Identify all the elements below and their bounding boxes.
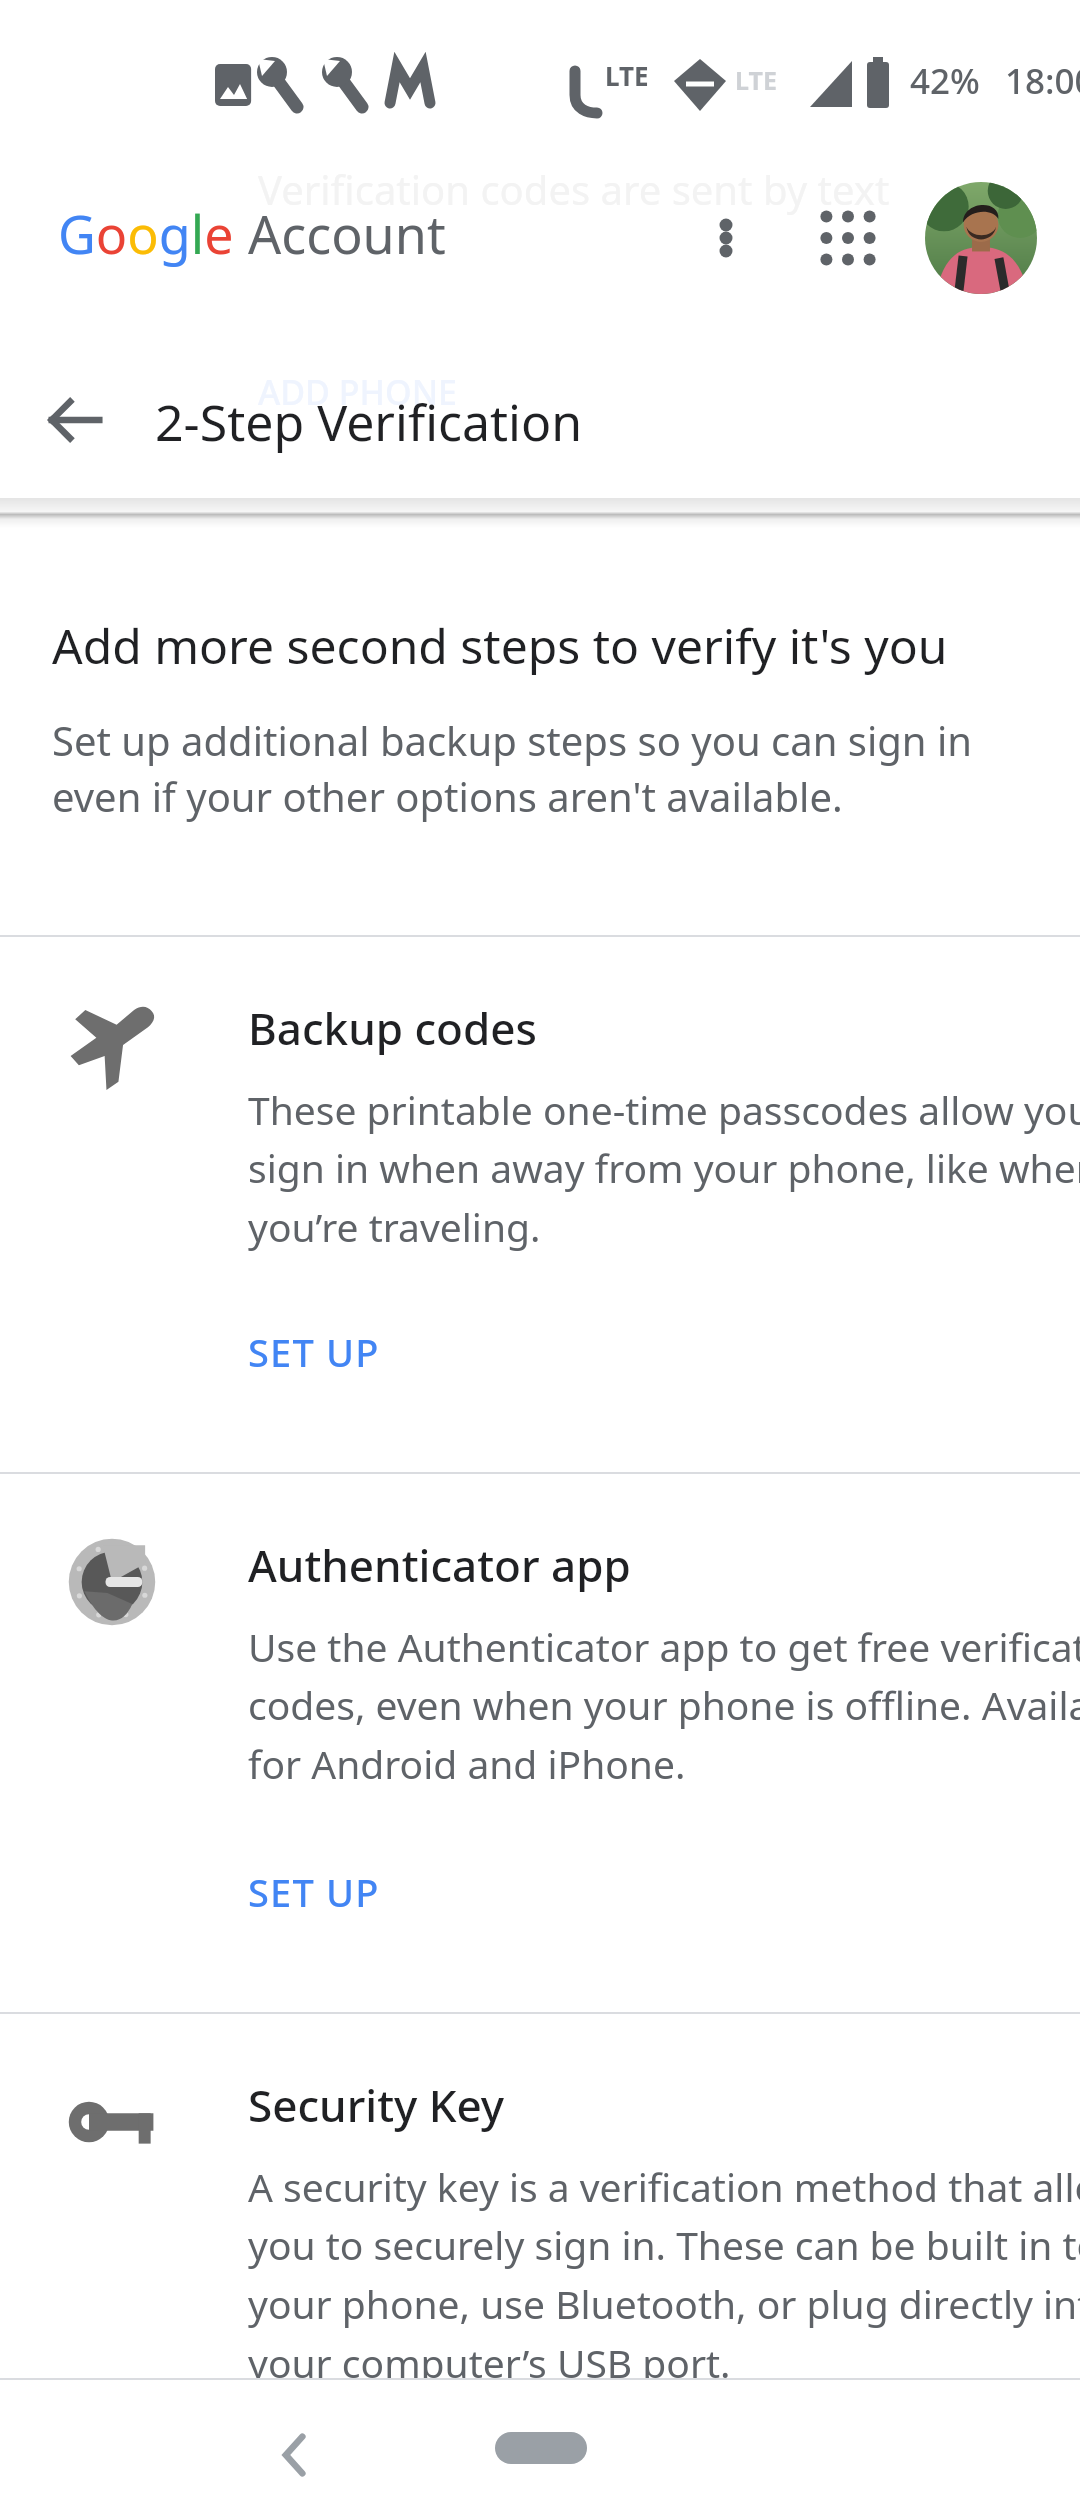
staticText: Backup codes (248, 998, 537, 1058)
other: Security key (62, 2072, 162, 2172)
staticText: Security Key (248, 2075, 505, 2135)
staticText: These printable one-time passcodes allow… (248, 1083, 1080, 1254)
staticText: Use the Authenticator app to get free ve… (248, 1620, 1080, 1791)
staticText: A security key is a verification method … (248, 2160, 1080, 2390)
staticText: 18:00 (1005, 57, 1080, 105)
staticText: ADD PHONE (258, 369, 457, 415)
staticText: LTE (735, 63, 777, 97)
staticText: SET UP (248, 1866, 380, 1918)
button[interactable]: Home (495, 2432, 587, 2464)
other: Backup codes (62, 995, 162, 1095)
other: Authenticator app (62, 1532, 162, 1632)
button[interactable]: Back (20, 365, 130, 475)
staticText: Authenticator app (248, 1535, 631, 1595)
button[interactable]: Back (240, 2400, 350, 2510)
staticText: 2-Step Verification (155, 388, 583, 456)
button[interactable]: More options (678, 190, 774, 286)
staticText: Account (248, 198, 446, 269)
staticText: Google (58, 198, 234, 269)
button[interactable]: SET UP (248, 1317, 428, 1387)
button[interactable]: Account profile photo (925, 182, 1037, 294)
button[interactable]: Google apps (800, 190, 896, 286)
staticText: 42% (910, 57, 980, 105)
staticText: LTE (605, 58, 649, 93)
staticText: SET UP (248, 1326, 380, 1378)
button[interactable]: SET UP (248, 1857, 428, 1927)
staticText: Add more second steps to verify it's you (52, 613, 1042, 678)
staticText: Set up additional backup steps so you ca… (52, 713, 992, 824)
staticText: Verification codes are sent by text (258, 162, 890, 216)
